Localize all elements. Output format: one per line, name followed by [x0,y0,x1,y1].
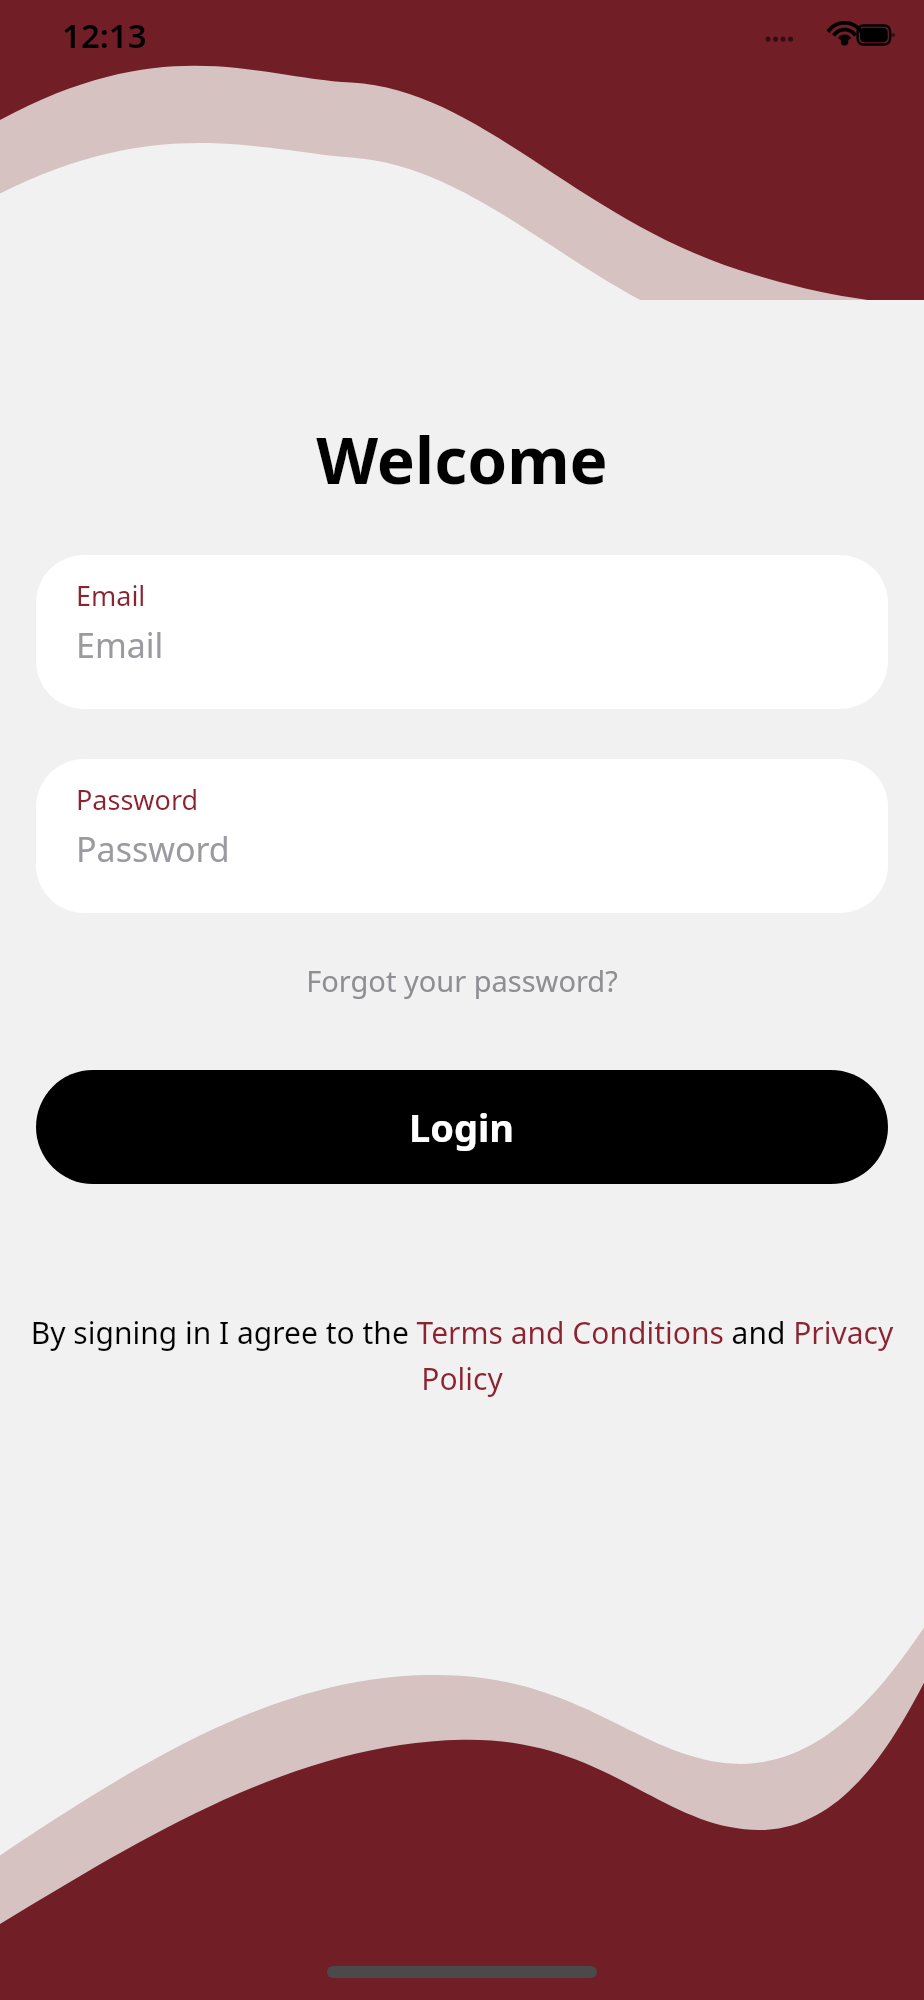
staticText: By signing in I agree to the Terms and C… [24,1312,900,1399]
button[interactable]: Forgot your password? [294,955,630,1006]
button[interactable]: By signing in I agree to the Terms and C… [24,1312,900,1399]
button[interactable]: Password [36,759,888,913]
staticText: Welcome [316,416,608,503]
staticText: Email [76,577,146,614]
staticText: Login [409,1101,515,1153]
staticText: Forgot your password? [306,961,618,1000]
button[interactable]: Email [36,555,888,709]
staticText: Email [76,622,164,668]
staticText: 12:13 [62,13,147,58]
staticText: Password [76,781,199,818]
button[interactable]: Login [36,1070,888,1184]
staticText: Password [76,826,230,872]
